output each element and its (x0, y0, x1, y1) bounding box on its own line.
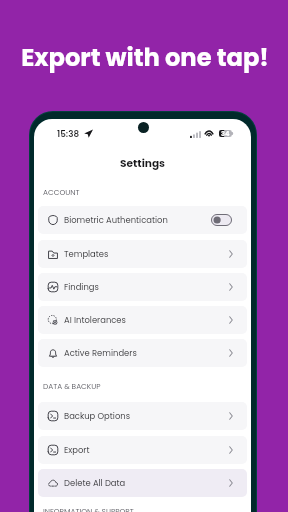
staticText: Biometric Authentication (64, 214, 168, 226)
button[interactable]: Delete All Data (38, 469, 247, 497)
staticText: Templates (64, 248, 109, 260)
staticText: Delete All Data (64, 477, 126, 489)
staticText: Export with one tap! (1, 41, 288, 75)
staticText: Export (64, 444, 90, 456)
staticText: ACCOUNT (43, 187, 80, 197)
staticText: DATA & BACKUP (43, 381, 101, 391)
button[interactable]: Findings (38, 273, 247, 301)
staticText: AI Intolerances (64, 314, 126, 326)
staticText: 34 (221, 129, 230, 136)
staticText: Findings (64, 281, 99, 293)
button[interactable]: Templates (38, 240, 247, 268)
button[interactable]: Export (38, 436, 247, 464)
staticText: 15:38 (57, 128, 80, 140)
button[interactable]: Biometric Authentication toggle (211, 214, 232, 226)
button[interactable]: Biometric Authentication (38, 206, 247, 234)
staticText: Settings (34, 156, 251, 171)
button[interactable]: Backup Options (38, 402, 247, 430)
button[interactable]: AI Intolerances (38, 306, 247, 334)
staticText: INFORMATION & SUPPORT (43, 506, 134, 512)
button[interactable]: Active Reminders (38, 339, 247, 367)
staticText: Backup Options (64, 410, 131, 422)
staticText: Active Reminders (64, 347, 137, 359)
